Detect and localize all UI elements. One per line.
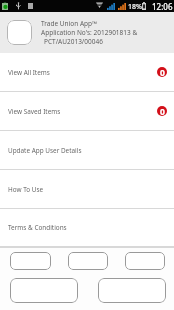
staticText: PCT/AU2013/00046 bbox=[44, 37, 103, 46]
staticText: How To Use bbox=[8, 185, 44, 194]
button[interactable]: Add Item bbox=[10, 278, 78, 303]
staticText: Trade Union App™ bbox=[41, 19, 98, 28]
button[interactable]: Terms & Conditions bbox=[0, 209, 174, 246]
button[interactable]: How To Use bbox=[0, 170, 174, 208]
button[interactable]: View Saved Items bbox=[0, 92, 174, 130]
staticText: 12:06 bbox=[152, 1, 173, 12]
button[interactable]: Home bbox=[10, 252, 51, 270]
staticText: Terms & Conditions bbox=[8, 223, 67, 232]
button[interactable]: View All Items bbox=[0, 53, 174, 91]
button[interactable]: Scan bbox=[125, 252, 165, 270]
staticText: 0 bbox=[160, 106, 165, 116]
staticText: 0 bbox=[160, 67, 165, 77]
staticText: View All Items bbox=[8, 68, 50, 77]
staticText: View Saved Items bbox=[8, 107, 61, 116]
button[interactable]: Settings bbox=[98, 278, 166, 303]
button[interactable]: Search bbox=[68, 252, 108, 270]
staticText: Application No's: 2012901813 & bbox=[41, 28, 138, 37]
staticText: Update App User Details bbox=[8, 146, 82, 155]
button[interactable]: Update App User Details bbox=[0, 131, 174, 169]
staticText: 18% bbox=[128, 2, 142, 12]
